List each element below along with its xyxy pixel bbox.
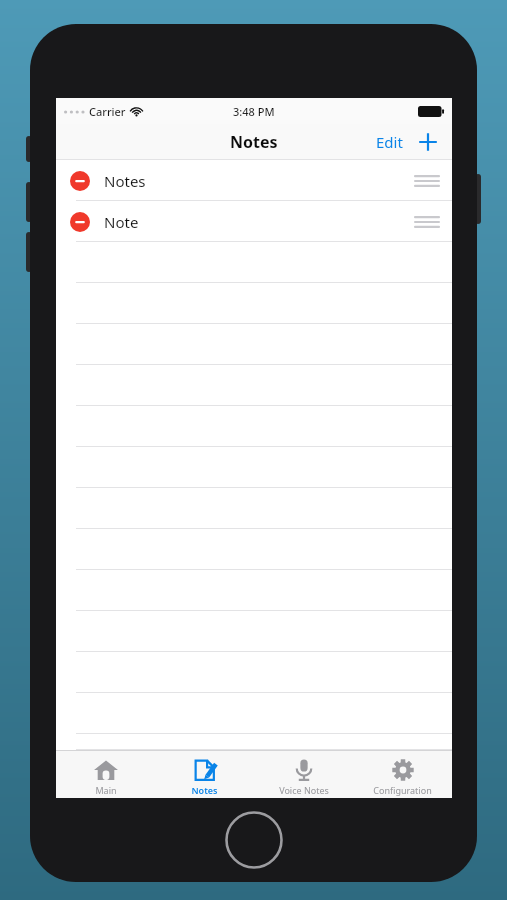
button[interactable]: Add note: [410, 129, 446, 155]
button[interactable]: Edit: [369, 128, 410, 156]
button[interactable]: Notes: [155, 754, 254, 796]
staticText: Notes: [104, 171, 146, 191]
staticText: Notes: [191, 784, 218, 796]
button[interactable]: Delete Note: [56, 201, 452, 242]
button[interactable]: Reorder Notes: [414, 171, 440, 191]
staticText: Carrier: [89, 104, 126, 119]
staticText: Main: [95, 784, 117, 796]
staticText: Note: [104, 212, 139, 232]
button[interactable]: Configuration: [353, 754, 452, 796]
staticText: 3:48 PM: [233, 104, 275, 119]
staticText: Configuration: [373, 784, 432, 796]
staticText: Edit: [376, 132, 403, 152]
staticText: Voice Notes: [279, 784, 329, 796]
button[interactable]: Delete Note: [70, 212, 90, 232]
button[interactable]: Voice Notes: [254, 754, 353, 796]
staticText: Notes: [230, 131, 278, 153]
button[interactable]: Reorder Note: [414, 212, 440, 232]
button[interactable]: Main: [56, 754, 155, 796]
button[interactable]: Delete Notes: [56, 160, 452, 201]
button[interactable]: Delete Notes: [70, 171, 90, 191]
